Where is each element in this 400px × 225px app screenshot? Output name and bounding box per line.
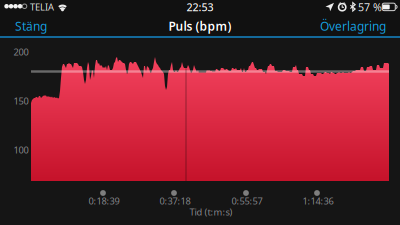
staticText: Puls (bpm): [168, 18, 231, 34]
staticText: 100: [13, 144, 28, 156]
staticText: 57 %: [358, 0, 382, 14]
button[interactable]: Överlagring: [312, 15, 400, 37]
staticText: 0:37:18: [159, 195, 190, 207]
staticText: TELIA: [30, 1, 54, 13]
staticText: Stäng: [15, 18, 47, 34]
staticText: 22:53: [186, 0, 213, 14]
staticText: 0:18:39: [88, 195, 119, 207]
staticText: Tid (t:m:s): [189, 206, 232, 218]
staticText: 150: [13, 95, 28, 107]
staticText: Överlagring: [320, 18, 386, 34]
staticText: 1:14:36: [302, 195, 333, 207]
button[interactable]: Stäng: [0, 15, 55, 37]
staticText: 0:55:57: [231, 195, 262, 207]
staticText: 200: [13, 46, 28, 58]
